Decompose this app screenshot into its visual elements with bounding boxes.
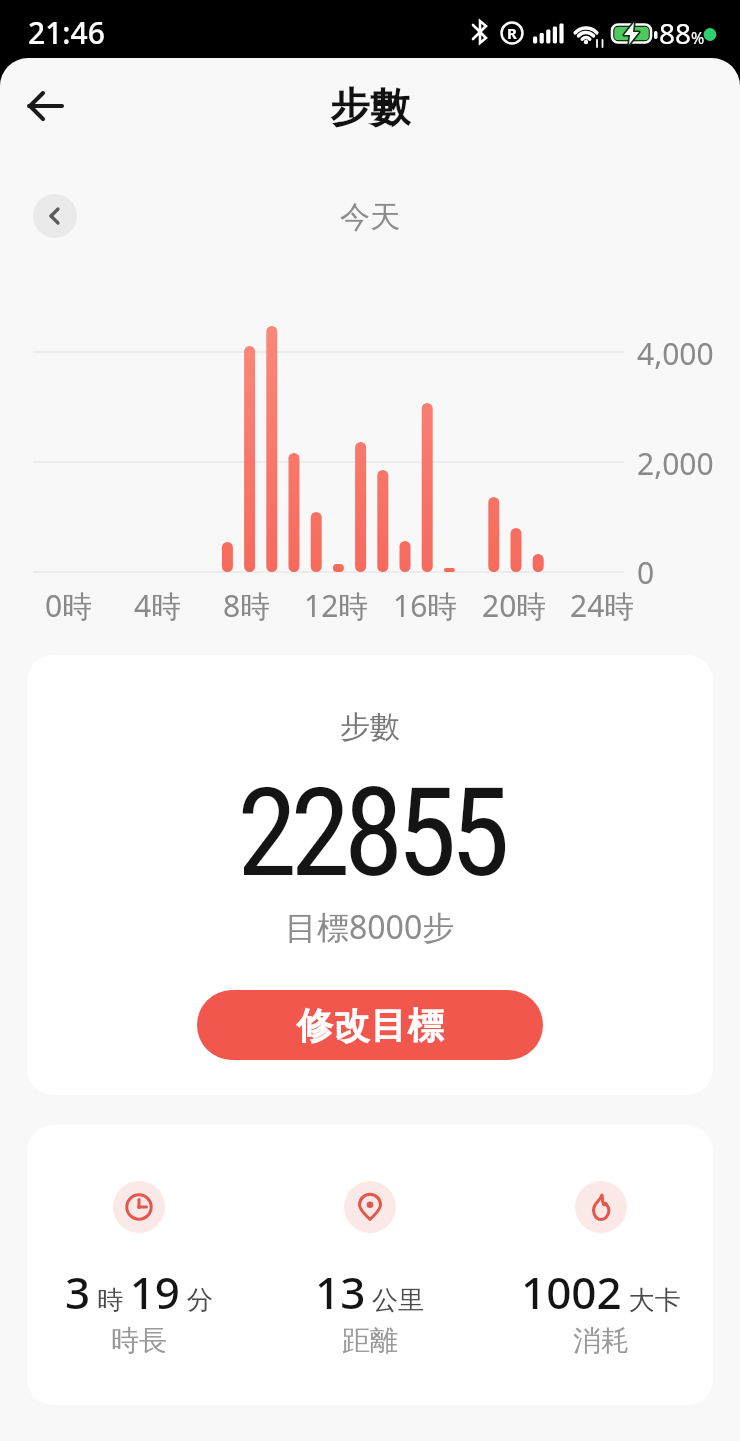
staticText: 24時 — [570, 585, 635, 626]
staticText: 12時 — [304, 585, 369, 626]
staticText: 目標8000步 — [285, 905, 455, 949]
staticText: 20時 — [482, 585, 547, 626]
staticText: 3 時 19 分 — [65, 1262, 213, 1322]
staticText: R — [507, 23, 517, 43]
staticText: 消耗 — [573, 1323, 629, 1358]
staticText: 22855 — [237, 762, 504, 905]
staticText: 0 — [637, 552, 655, 592]
staticText: 2,000 — [637, 443, 714, 483]
button[interactable]: 修改目標 — [197, 990, 543, 1060]
staticText: 今天 — [340, 198, 400, 236]
staticText: 21:46 — [28, 12, 105, 53]
staticText: 步數 — [340, 708, 400, 746]
staticText: 88% — [659, 14, 705, 52]
button[interactable] — [33, 194, 77, 238]
staticText: 16時 — [393, 585, 458, 626]
staticText: 13 公里 — [315, 1262, 425, 1322]
staticText: 步數 — [330, 82, 410, 132]
staticText: 4,000 — [637, 333, 714, 373]
staticText: 4時 — [134, 585, 182, 626]
staticText: 修改目標 — [296, 1003, 444, 1048]
staticText: 8時 — [223, 585, 271, 626]
staticText: 距離 — [342, 1323, 398, 1358]
staticText: 時長 — [111, 1323, 167, 1358]
staticText: 0時 — [45, 585, 93, 626]
button[interactable] — [18, 78, 74, 134]
staticText: 1002 大卡 — [521, 1262, 681, 1322]
